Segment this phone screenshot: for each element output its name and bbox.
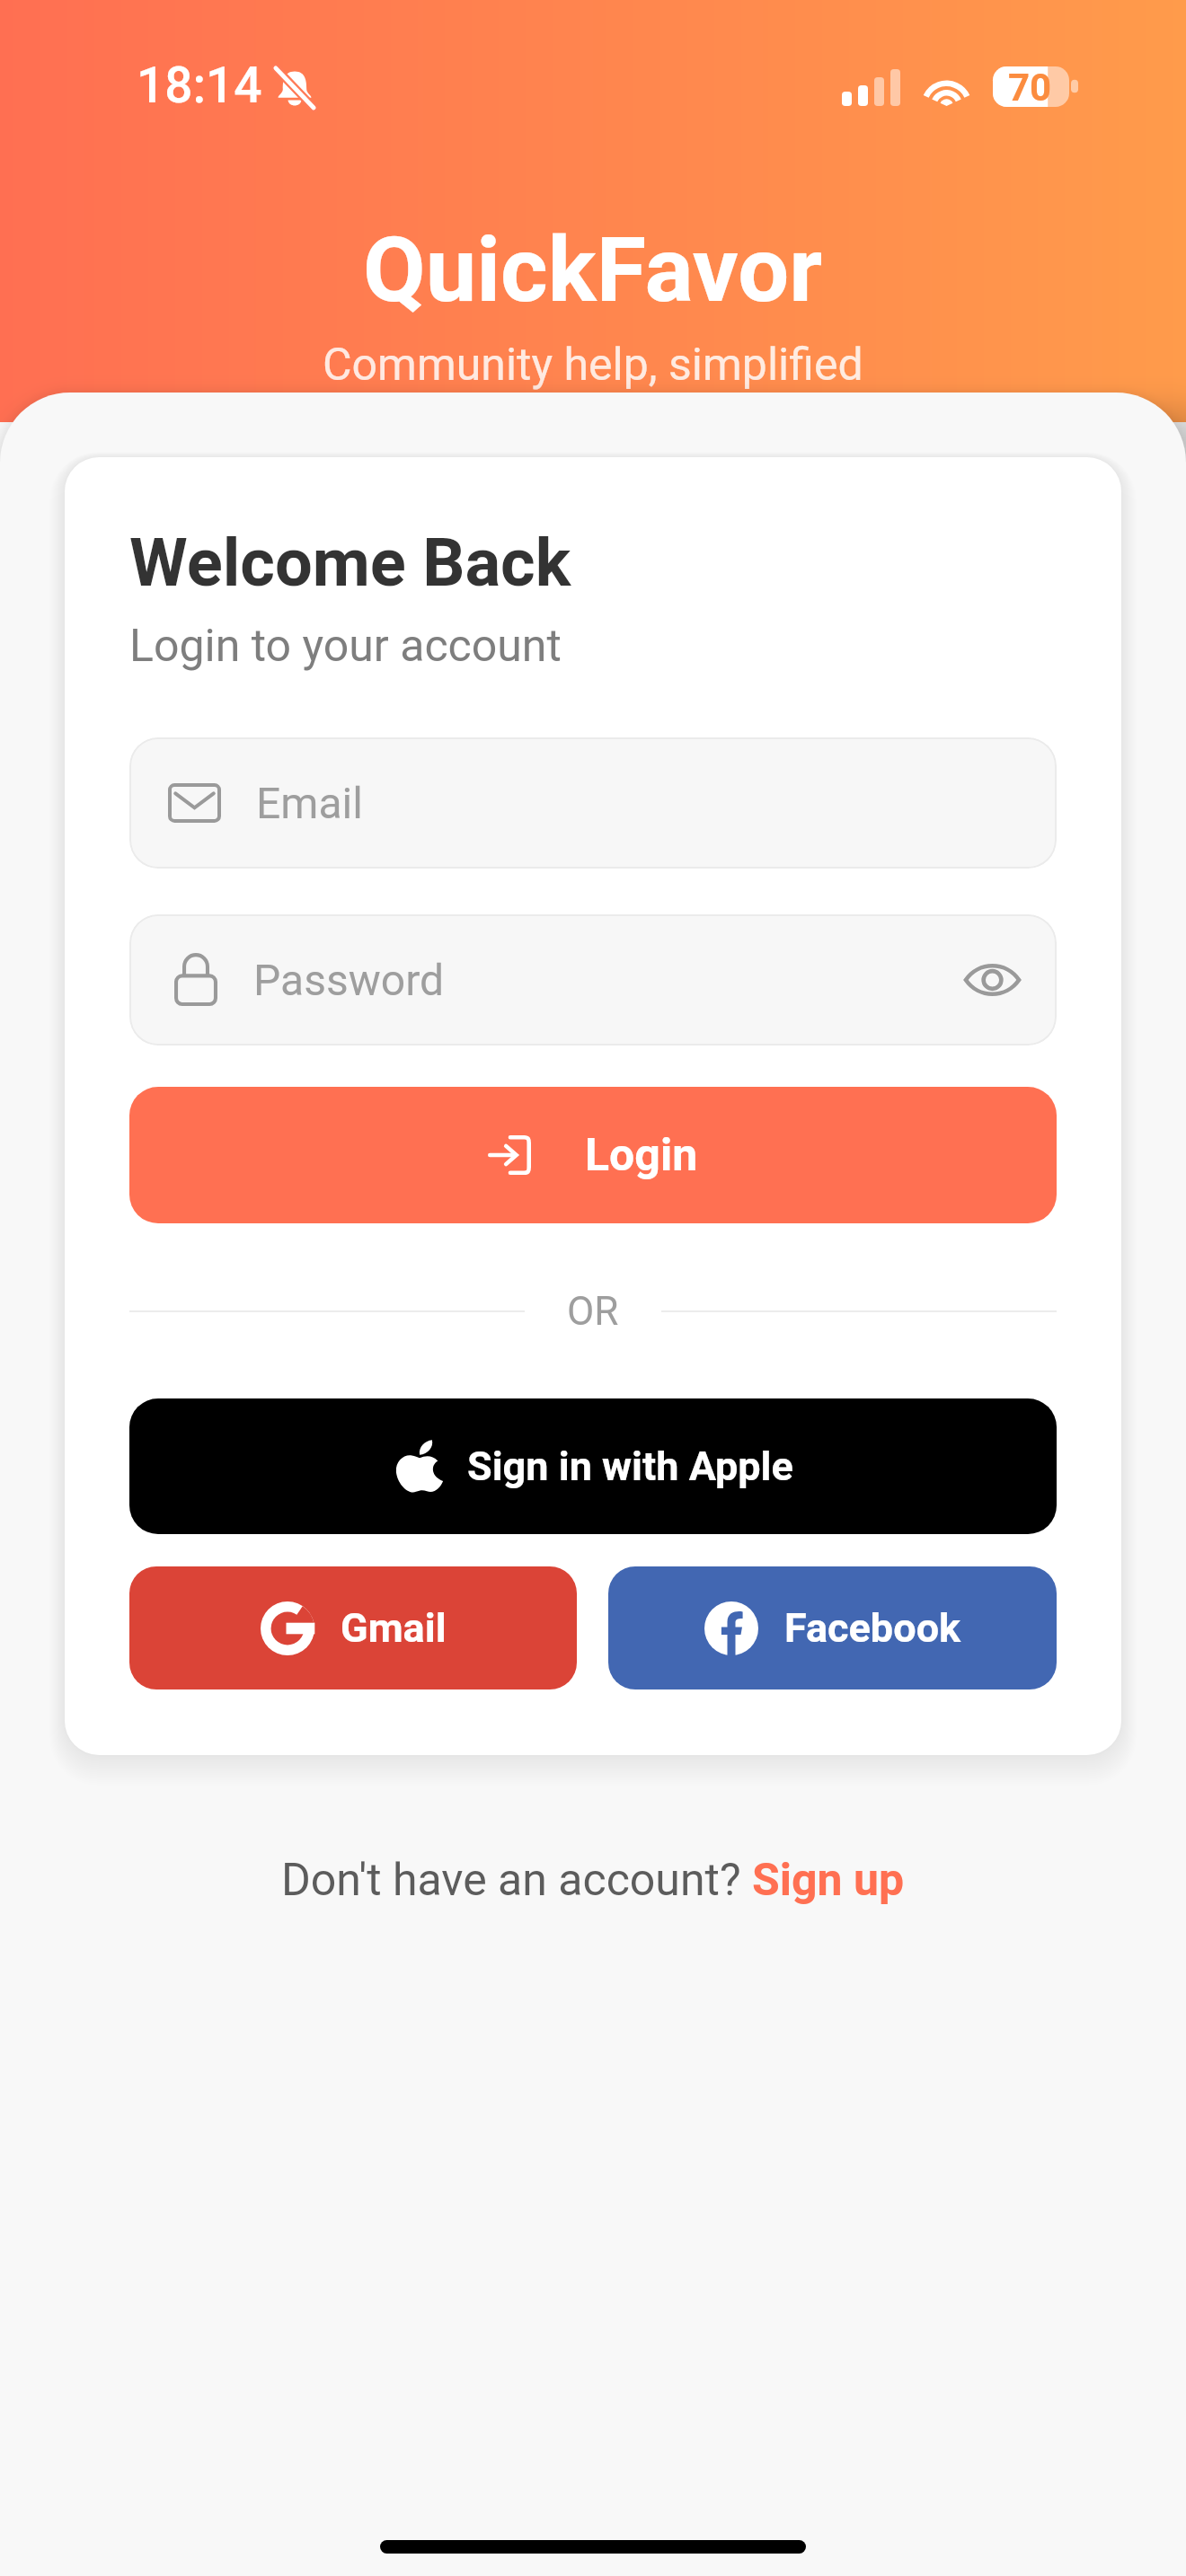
button[interactable]: Sign up [752, 1854, 905, 1907]
staticText: Email [256, 778, 363, 828]
staticText: Community help, simplified [323, 339, 863, 392]
staticText: Don't have an account? [281, 1854, 752, 1907]
button[interactable]: Sign in with Apple [129, 1398, 1057, 1534]
button[interactable]: Show password [958, 946, 1026, 1014]
staticText: Gmail [341, 1604, 447, 1652]
button[interactable]: Email [129, 737, 1057, 869]
button[interactable]: Facebook [608, 1566, 1057, 1689]
button[interactable]: Password [129, 914, 1057, 1045]
staticText: Welcome Back [129, 524, 571, 602]
staticText: QuickFavor [363, 216, 823, 322]
staticText: Sign in with Apple [467, 1442, 793, 1490]
staticText: OR [567, 1288, 619, 1335]
staticText: Sign up [752, 1854, 905, 1907]
button[interactable]: Login [129, 1087, 1057, 1223]
staticText: Login to your account [129, 620, 562, 673]
staticText: Login [585, 1129, 698, 1182]
staticText: Password [253, 955, 445, 1005]
staticText: 18:14 [137, 57, 262, 114]
button[interactable]: Gmail [129, 1566, 577, 1689]
staticText: Facebook [784, 1604, 961, 1652]
staticText: 70 [1008, 66, 1052, 106]
